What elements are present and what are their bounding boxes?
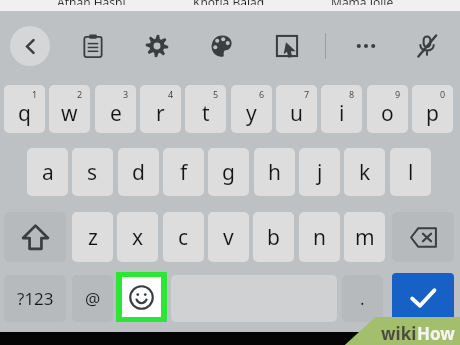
button[interactable]: l: [390, 148, 431, 196]
staticText: p: [426, 99, 439, 128]
button[interactable]: Backspace: [392, 212, 454, 262]
staticText: 2: [77, 88, 83, 100]
staticText: f: [180, 158, 188, 187]
staticText: 1: [32, 88, 38, 100]
button[interactable]: Emoji: [116, 272, 167, 322]
staticText: Athan Hasbi...: [57, 0, 136, 5]
staticText: 4: [168, 88, 174, 100]
staticText: 7: [304, 88, 310, 100]
button[interactable]: x: [117, 212, 158, 262]
button[interactable]: h: [254, 148, 295, 196]
button[interactable]: 9: [367, 85, 408, 133]
staticText: k: [359, 158, 371, 187]
staticText: 0: [440, 88, 446, 100]
staticText: z: [88, 223, 98, 252]
staticText: c: [178, 223, 189, 252]
staticText: b: [267, 223, 280, 252]
staticText: 5: [213, 88, 219, 100]
staticText: wiki: [381, 322, 417, 345]
button[interactable]: Symbols: [4, 275, 66, 322]
button[interactable]: Clipboard: [74, 27, 112, 65]
staticText: n: [313, 223, 326, 252]
staticText: t: [202, 99, 210, 128]
button[interactable]: c: [163, 212, 204, 262]
staticText: o: [381, 99, 394, 128]
button[interactable]: n: [299, 212, 340, 262]
staticText: j: [317, 158, 323, 187]
button[interactable]: More options: [347, 27, 385, 65]
button[interactable]: 7: [276, 85, 317, 133]
button[interactable]: Microphone muted: [408, 27, 446, 65]
staticText: m: [355, 223, 375, 252]
button[interactable]: 5: [185, 85, 226, 133]
button[interactable]: 6: [231, 85, 272, 133]
button[interactable]: z: [72, 212, 113, 262]
button[interactable]: At sign: [72, 275, 113, 322]
button[interactable]: k: [344, 148, 385, 196]
staticText: How: [417, 322, 455, 345]
staticText: Khotia Balad...: [193, 0, 274, 5]
staticText: s: [87, 158, 98, 187]
button[interactable]: 4: [140, 85, 181, 133]
button[interactable]: Period: [342, 275, 383, 322]
staticText: q: [18, 99, 31, 128]
staticText: i: [339, 99, 345, 128]
staticText: .: [360, 287, 365, 310]
staticText: h: [268, 158, 281, 187]
staticText: e: [110, 99, 122, 128]
staticText: v: [223, 223, 234, 252]
button[interactable]: 3: [95, 85, 136, 133]
staticText: Mama Jolle...: [331, 0, 403, 5]
staticText: 6: [259, 88, 265, 100]
button[interactable]: f: [163, 148, 204, 196]
button[interactable]: Resize keyboard: [268, 27, 306, 65]
button[interactable]: m: [344, 212, 385, 262]
button[interactable]: d: [118, 148, 159, 196]
button[interactable]: 1: [4, 85, 45, 133]
staticText: @: [85, 287, 101, 310]
button[interactable]: Enter: [392, 273, 454, 322]
button[interactable]: 0: [412, 85, 453, 133]
button[interactable]: Shift: [4, 212, 66, 262]
staticText: w: [61, 99, 78, 128]
staticText: 8: [349, 88, 355, 100]
button[interactable]: Back: [10, 26, 50, 66]
staticText: 9: [395, 88, 401, 100]
staticText: x: [132, 223, 144, 252]
button[interactable]: j: [299, 148, 340, 196]
staticText: g: [222, 158, 235, 187]
button[interactable]: 2: [49, 85, 90, 133]
button[interactable]: Settings: [138, 27, 176, 65]
staticText: u: [290, 99, 303, 128]
staticText: r: [156, 99, 165, 128]
staticText: l: [408, 158, 414, 187]
staticText: y: [246, 99, 257, 128]
button[interactable]: a: [27, 148, 68, 196]
staticText: ?123: [17, 287, 54, 310]
staticText: 3: [123, 88, 129, 100]
staticText: d: [132, 158, 145, 187]
button[interactable]: s: [72, 148, 113, 196]
button[interactable]: v: [208, 212, 249, 262]
button[interactable]: Theme: [203, 27, 241, 65]
button[interactable]: b: [253, 212, 294, 262]
button[interactable]: 8: [321, 85, 362, 133]
staticText: a: [42, 158, 54, 187]
button[interactable]: g: [208, 148, 249, 196]
